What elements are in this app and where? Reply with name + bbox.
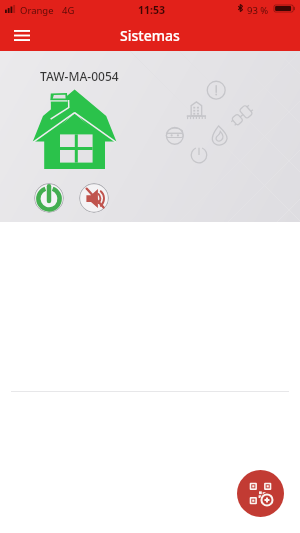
staticText: TAW-MA-0054 [40, 68, 119, 84]
staticText: 11:53 [138, 3, 165, 17]
button[interactable]: Open navigation menu [8, 21, 36, 49]
staticText: Orange [20, 4, 54, 17]
button[interactable]: Mute siren [79, 183, 109, 213]
button[interactable]: TAW-MA-0054 [0, 51, 300, 222]
staticText: 93 % [247, 4, 269, 17]
staticText: 4G [62, 4, 75, 17]
staticText: Sistemas [120, 26, 180, 45]
button[interactable]: Add system by QR code [237, 470, 284, 517]
button[interactable]: Arm system [34, 183, 64, 213]
